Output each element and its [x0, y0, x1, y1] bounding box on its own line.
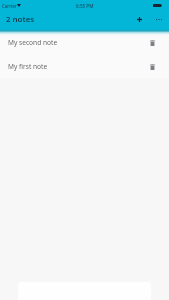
- staticText: Carrier: [2, 3, 17, 9]
- button[interactable]: Delete note: [146, 61, 158, 73]
- staticText: My second note: [8, 38, 58, 47]
- button[interactable]: More options: [151, 12, 166, 27]
- staticText: My first note: [8, 62, 48, 71]
- button[interactable]: My first note: [0, 54, 169, 78]
- button[interactable]: My second note: [0, 30, 169, 54]
- button[interactable]: Add note: [132, 12, 147, 27]
- staticText: 2 notes: [6, 14, 35, 25]
- staticText: 6:55 PM: [76, 3, 94, 9]
- button[interactable]: Delete note: [146, 37, 158, 49]
